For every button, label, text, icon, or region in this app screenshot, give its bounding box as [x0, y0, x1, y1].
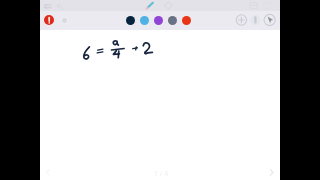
button[interactable]: Pointer [263, 13, 277, 27]
button[interactable]: Add [235, 13, 248, 27]
button[interactable]: Colour [140, 16, 149, 25]
button[interactable]: Recording [44, 15, 54, 25]
staticText: 1 / 4 [154, 169, 169, 179]
button[interactable]: Colour [168, 16, 177, 25]
button[interactable]: Mute [60, 16, 69, 25]
button[interactable]: Shapes [163, 0, 175, 11]
button[interactable]: Pen [143, 0, 157, 11]
button[interactable]: Colour [154, 16, 163, 25]
button[interactable]: Next page [265, 166, 279, 180]
button[interactable]: Undo [42, 1, 53, 11]
button[interactable]: Eraser [249, 13, 262, 27]
button[interactable]: Colour [182, 16, 191, 25]
button[interactable]: Colour [126, 16, 135, 25]
